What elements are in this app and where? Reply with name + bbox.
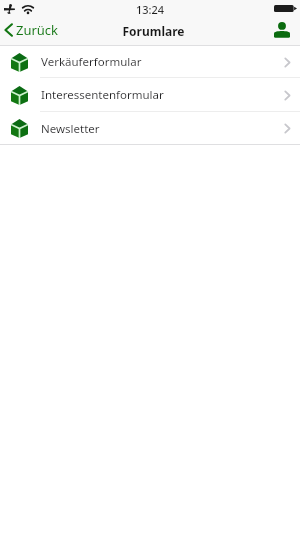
staticText: Interessentenformular: [41, 87, 164, 103]
staticText: Forumlare: [122, 23, 185, 39]
button[interactable]: Interessentenformular: [0, 78, 300, 112]
staticText: Verkäuferformular: [41, 54, 142, 70]
button[interactable]: Zurück: [0, 20, 67, 40]
staticText: Newsletter: [41, 121, 100, 137]
staticText: 13:24: [136, 2, 165, 17]
button[interactable]: Newsletter: [0, 112, 300, 145]
button[interactable]: Account: [268, 17, 296, 43]
button[interactable]: Verkäuferformular: [0, 46, 300, 78]
staticText: Zurück: [16, 21, 59, 39]
